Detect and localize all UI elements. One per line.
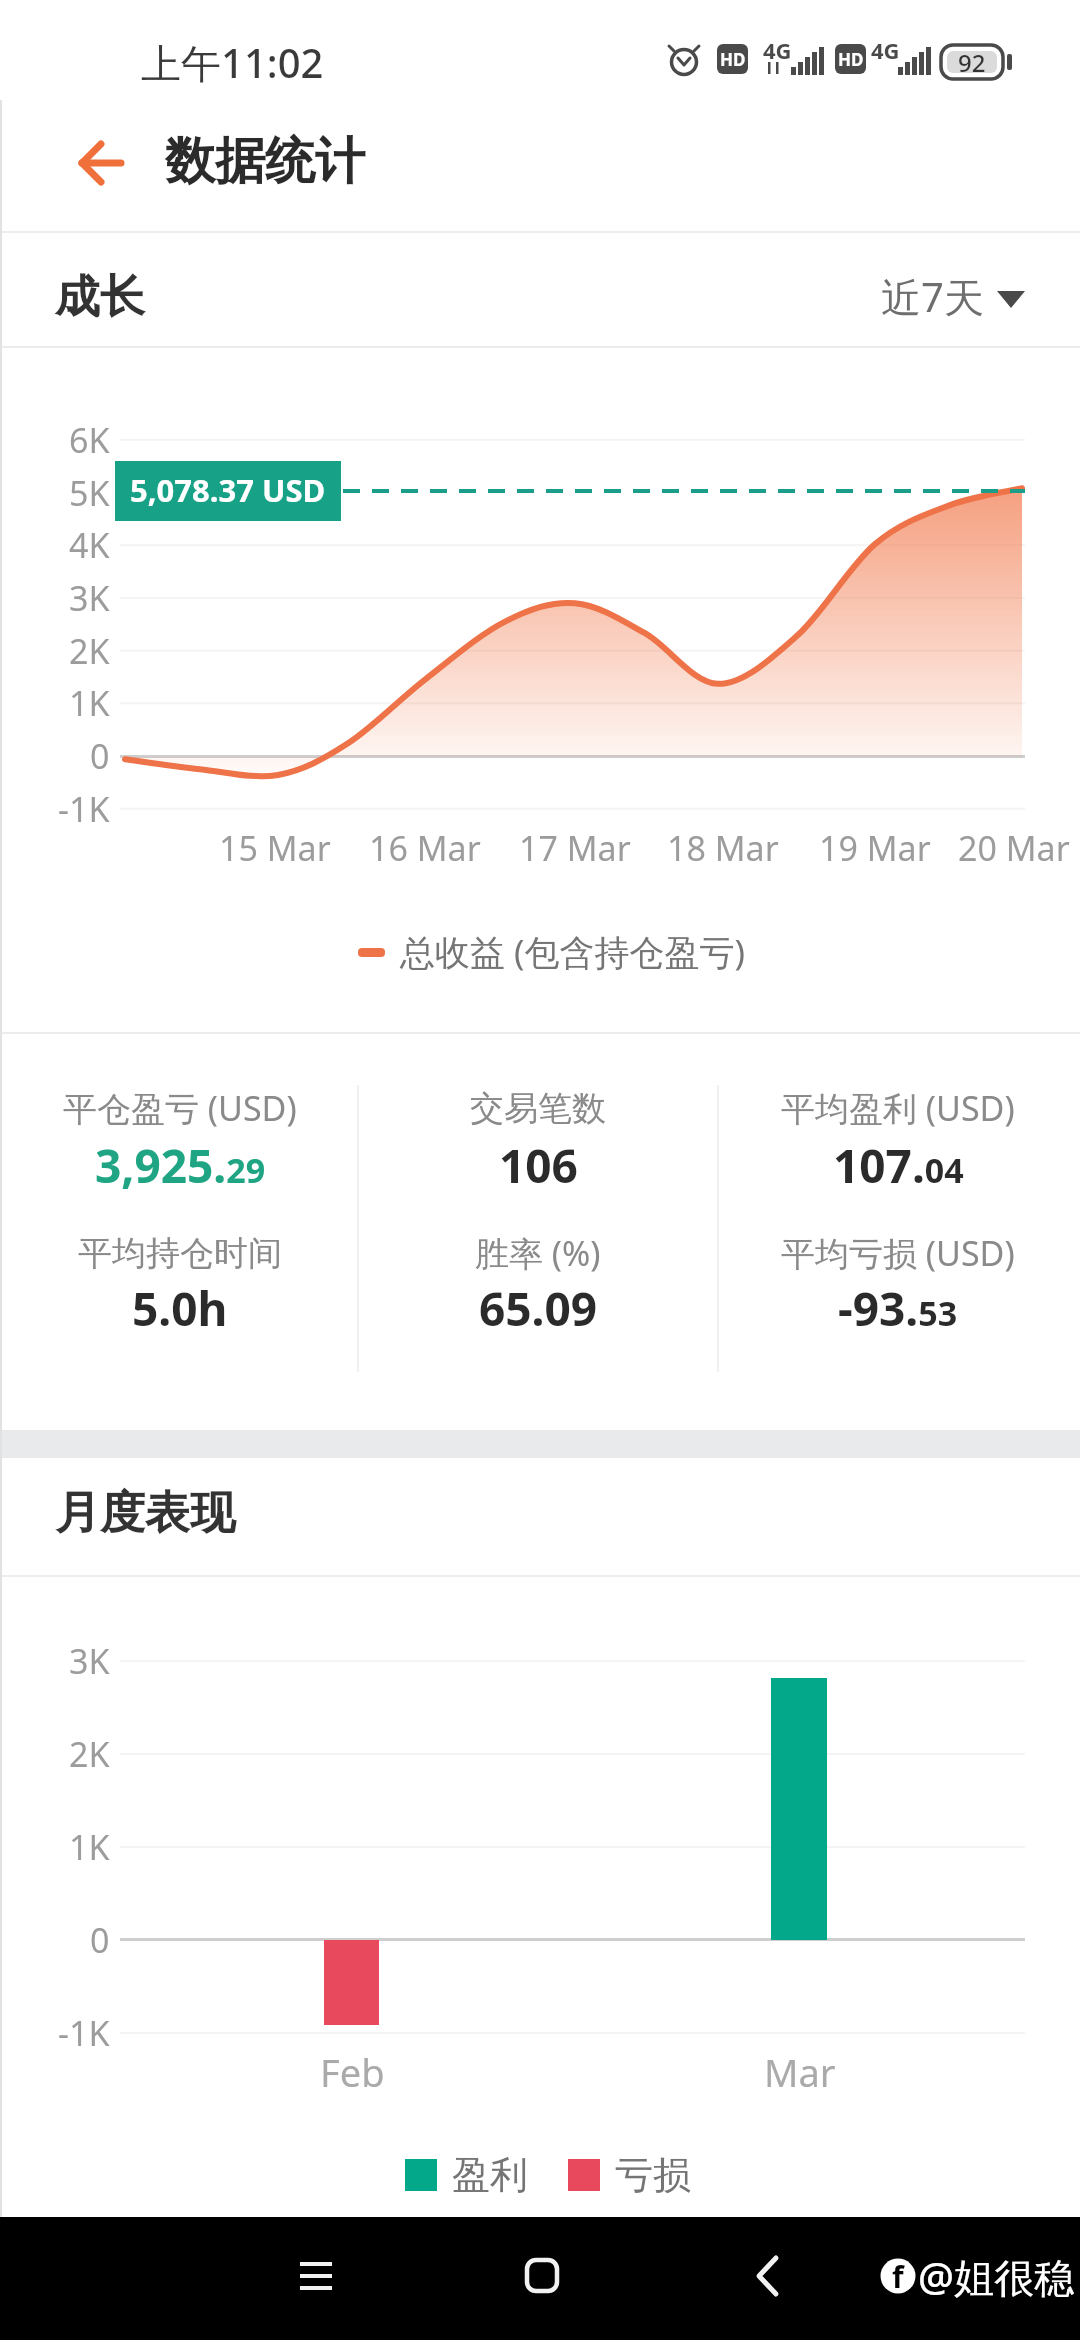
staticText: 15 Mar <box>219 825 331 871</box>
staticText: 5,078.37 USD <box>130 469 326 511</box>
staticText: 胜率 (%) <box>475 1230 601 1276</box>
staticText: -1K <box>58 786 110 832</box>
staticText: HD <box>838 48 864 71</box>
staticText: 月度表现 <box>55 1485 235 1542</box>
staticText: 17 Mar <box>519 825 631 871</box>
staticText: 平均盈利 (USD) <box>781 1085 1015 1131</box>
button[interactable] <box>491 2237 591 2317</box>
staticText: 4G <box>871 35 900 65</box>
staticText: -1K <box>58 2010 110 2056</box>
staticText: Feb <box>320 2046 385 2098</box>
staticText: 6K <box>69 417 110 463</box>
staticText: 5.0h <box>132 1277 228 1340</box>
button[interactable] <box>885 263 1035 328</box>
staticText: 20 Mar <box>958 825 1070 871</box>
staticText: 4G <box>763 35 792 65</box>
staticText: 16 Mar <box>369 825 481 871</box>
staticText: 0 <box>90 733 110 779</box>
staticText: 平仓盈亏 (USD) <box>63 1085 297 1131</box>
staticText: 3K <box>69 1638 110 1684</box>
staticText: @姐很稳 <box>918 2249 1074 2304</box>
staticText: 总收益 (包含持仓盈亏) <box>400 928 746 976</box>
staticText: 交易笔数 <box>470 1087 606 1130</box>
staticText: 平均持仓时间 <box>78 1232 282 1275</box>
staticText: 5K <box>69 470 110 516</box>
staticText: Mar <box>764 2046 836 2098</box>
staticText: 2K <box>69 1731 110 1777</box>
staticText: 4K <box>69 522 110 568</box>
staticText: 成长 <box>55 269 145 326</box>
staticText: 2K <box>69 628 110 674</box>
staticText: 上午11:02 <box>141 35 324 90</box>
staticText: f <box>892 2256 904 2297</box>
staticText: 106 <box>499 1134 578 1197</box>
staticText: 0 <box>90 1917 110 1963</box>
staticText: 92 <box>958 46 986 79</box>
staticText: 3,925.29 <box>95 1134 266 1197</box>
staticText: 19 Mar <box>819 825 931 871</box>
staticText: 1K <box>69 680 110 726</box>
staticText: HD <box>720 48 746 71</box>
staticText: 107.04 <box>833 1134 964 1197</box>
staticText: 18 Mar <box>667 825 779 871</box>
staticText: 3K <box>69 575 110 621</box>
button[interactable] <box>266 2237 366 2317</box>
staticText: 平均亏损 (USD) <box>781 1230 1015 1276</box>
button[interactable] <box>717 2237 817 2317</box>
staticText: 1K <box>69 1824 110 1870</box>
staticText: 65.09 <box>479 1277 598 1340</box>
button[interactable] <box>55 128 145 198</box>
staticText: -93.53 <box>838 1277 958 1340</box>
staticText: 盈利 <box>452 2151 528 2199</box>
staticText: 数据统计 <box>165 130 365 193</box>
staticText: 近7天 <box>881 269 984 324</box>
staticText: 亏损 <box>615 2151 691 2199</box>
